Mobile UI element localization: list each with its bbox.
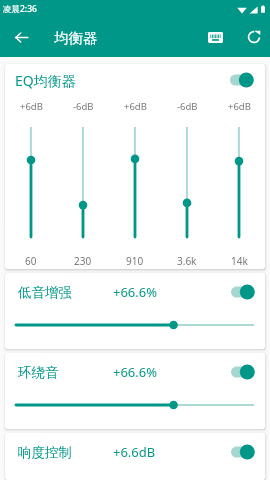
button[interactable]: Toggle — [230, 442, 256, 462]
button[interactable]: Toggle — [230, 282, 256, 302]
button[interactable] — [213, 122, 265, 242]
staticText: +66.6% — [113, 363, 158, 381]
staticText: 910 — [126, 254, 144, 268]
staticText: -6dB — [73, 100, 94, 113]
button[interactable]: Refresh — [238, 21, 270, 53]
staticText: -6dB — [177, 100, 198, 113]
button[interactable] — [109, 122, 161, 242]
staticText: +66.6% — [113, 283, 158, 301]
staticText: +6dB — [124, 100, 147, 113]
staticText: 响度控制 — [18, 444, 72, 461]
button[interactable] — [57, 122, 109, 242]
button[interactable]: Toggle — [230, 362, 256, 382]
button[interactable]: Back — [8, 24, 34, 50]
staticText: 60 — [25, 254, 37, 268]
staticText: +6.6dB — [113, 443, 156, 461]
staticText: 均衡器 — [54, 29, 98, 47]
staticText: +6dB — [228, 100, 251, 113]
staticText: 环绕音 — [18, 364, 59, 381]
button[interactable] — [16, 315, 254, 335]
staticText: +6dB — [20, 100, 43, 113]
button[interactable] — [5, 122, 57, 242]
staticText: 14k — [231, 254, 248, 268]
staticText: 3.6k — [177, 254, 197, 268]
button[interactable] — [161, 122, 213, 242]
staticText: 凌晨2:36 — [3, 3, 37, 15]
staticText: EQ均衡器 — [15, 71, 229, 90]
button[interactable] — [16, 395, 254, 415]
button[interactable]: Toggle — [229, 70, 255, 90]
button[interactable]: Keyboard — [193, 21, 238, 53]
staticText: 低音增强 — [18, 284, 72, 301]
staticText: 230 — [74, 254, 92, 268]
